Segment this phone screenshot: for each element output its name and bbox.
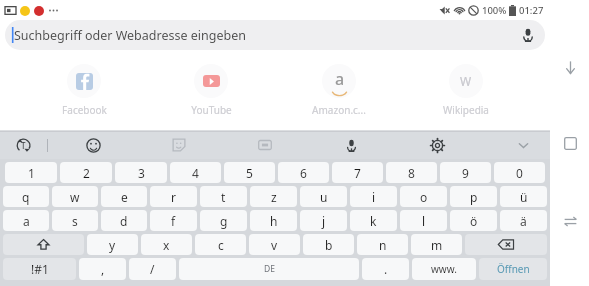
button[interactable]: Stickers [166,132,192,158]
button[interactable]: DE [179,258,359,280]
staticText: s [72,213,78,229]
button[interactable]: o [400,186,447,207]
staticText: r [171,189,176,205]
staticText: w [70,189,80,205]
staticText: c [218,237,224,253]
button[interactable]: ü [500,186,547,207]
staticText: 4 [192,165,199,181]
staticText: y [109,237,116,253]
button[interactable]: Recents [555,206,585,236]
staticText: i [372,189,376,205]
staticText: Öffnen [497,262,530,276]
staticText: v [271,237,278,253]
staticText: k [370,213,377,229]
staticText: 01:27 [519,4,544,17]
staticText: o [420,189,428,205]
staticText: 7 [354,165,361,181]
button[interactable]: y [87,234,138,255]
button[interactable]: p [450,186,497,207]
staticText: ö [470,213,478,229]
button[interactable]: g [200,210,247,231]
button[interactable]: , [79,258,126,280]
button[interactable]: www. [412,258,476,280]
button[interactable]: Suchbegriff oder Webadresse eingeben [5,20,545,50]
button[interactable]: Voice search [514,21,542,49]
button[interactable]: c [195,234,246,255]
button[interactable]: Settings [424,132,450,158]
staticText: 8 [408,165,415,181]
button[interactable]: m [411,234,462,255]
button[interactable]: ö [450,210,497,231]
button[interactable]: x [141,234,192,255]
button[interactable]: !#1 [3,258,76,280]
button[interactable]: 2 [60,162,112,183]
button[interactable]: 6 [278,162,329,183]
staticText: f [171,213,176,229]
button[interactable]: Shift [3,234,84,255]
button[interactable]: 1 [5,162,57,183]
button[interactable]: 0 [494,162,545,183]
button[interactable]: 4 [170,162,221,183]
button[interactable]: z [250,186,297,207]
staticText: , [101,261,105,277]
button[interactable]: b [303,234,354,255]
staticText: DE [264,263,275,275]
button[interactable]: l [400,210,447,231]
staticText: YouTube [191,103,232,117]
button[interactable]: q [3,186,49,207]
staticText: 100% [482,4,507,17]
button[interactable]: j [300,210,347,231]
button[interactable]: f [150,210,197,231]
button[interactable]: d [101,210,147,231]
button[interactable]: Home [555,128,585,158]
button[interactable]: u [300,186,347,207]
button[interactable]: GIF [252,132,278,158]
button[interactable]: 8 [386,162,437,183]
staticText: T [21,140,26,151]
button[interactable]: Collapse [510,132,536,158]
button[interactable]: a [3,210,49,231]
staticText: 3 [138,165,145,181]
button[interactable]: 9 [440,162,491,183]
staticText: e [121,189,128,205]
button[interactable]: 7 [332,162,383,183]
button[interactable]: Facebook [41,64,127,117]
button[interactable]: ä [500,210,547,231]
staticText: ü [520,189,528,205]
button[interactable]: k [350,210,397,231]
button[interactable]: n [357,234,408,255]
button[interactable]: w [52,186,98,207]
button[interactable]: . [362,258,409,280]
staticText: u [320,189,328,205]
staticText: j [322,213,326,229]
button[interactable]: Emoji [80,132,106,158]
staticText: !#1 [31,261,49,277]
button[interactable]: r [150,186,197,207]
button[interactable]: s [52,210,98,231]
staticText: 9 [462,165,469,181]
button[interactable]: Translate [10,132,36,158]
button[interactable]: i [350,186,397,207]
button[interactable]: 3 [115,162,167,183]
button[interactable]: v [249,234,300,255]
button[interactable]: Backspace [465,234,547,255]
staticText: . [384,261,388,277]
button[interactable]: a [296,64,382,117]
staticText: g [220,213,228,229]
button[interactable]: / [129,258,176,280]
button[interactable]: t [200,186,247,207]
button[interactable]: YouTube [168,64,254,117]
button[interactable]: Öffnen [479,258,547,280]
button[interactable]: W [423,64,509,117]
staticText: z [271,189,277,205]
staticText: ä [520,213,527,229]
button[interactable]: Back [555,52,585,82]
staticText: 1 [28,165,35,181]
staticText: Amazon.c... [312,103,366,117]
button[interactable]: 5 [224,162,275,183]
staticText: 6 [300,165,307,181]
staticText: m [431,237,443,253]
button[interactable]: h [250,210,297,231]
button[interactable]: Voice input [338,132,364,158]
button[interactable]: e [101,186,147,207]
